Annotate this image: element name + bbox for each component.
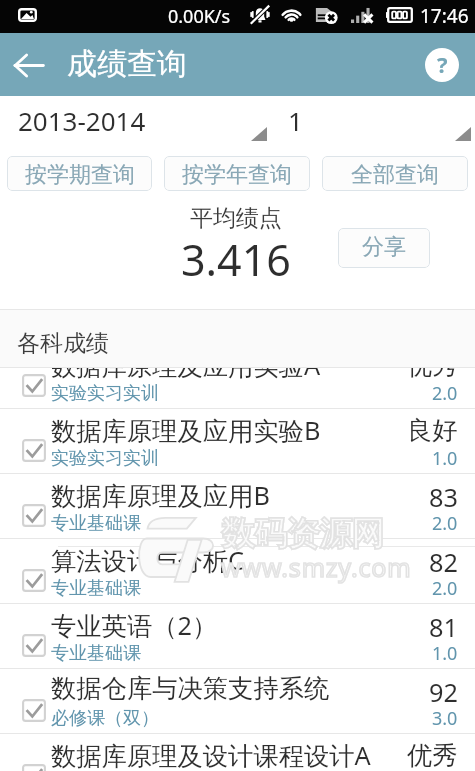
button[interactable] (237, 96, 475, 152)
button[interactable] (0, 96, 237, 152)
button[interactable]: 专业英语（2） (0, 604, 475, 669)
staticText: www.smzy.com (221, 550, 412, 584)
staticText: 优秀 (407, 740, 458, 771)
staticText: 专业基础课 (51, 642, 141, 665)
staticText: 1.0 (432, 446, 458, 471)
staticText: 分享 (362, 233, 406, 261)
button[interactable]: 按学期查询 (7, 156, 152, 191)
button[interactable]: 数据仓库与决策支持系统 (0, 669, 475, 734)
staticText: 数据库原理及应用B (51, 478, 270, 513)
staticText: 数据仓库与决策支持系统 (51, 673, 330, 705)
staticText: 实验实习实训 (51, 382, 159, 405)
staticText: 各科成绩 (17, 329, 109, 358)
button[interactable]: 全部查询 (322, 156, 468, 191)
staticText: 全部查询 (351, 161, 439, 189)
staticText: ? (437, 49, 448, 79)
button[interactable]: 数据库原理及应用B (0, 474, 475, 539)
staticText: 83 (429, 480, 458, 514)
staticText: 专业基础课 (51, 577, 141, 600)
staticText: 82 (429, 545, 458, 579)
staticText: 成绩查询 (67, 45, 187, 83)
staticText: www.smzy.com (221, 550, 412, 584)
button[interactable]: 分享 (338, 228, 430, 268)
staticText: 数据库原理及设计课程设计A (51, 738, 371, 771)
staticText: 专业基础课 (51, 512, 141, 535)
button[interactable]: 数据库原理及应用实验A (0, 368, 475, 409)
staticText: 数码资源网 (222, 513, 384, 555)
button[interactable]: 按学年查询 (164, 156, 310, 191)
staticText: 1.0 (432, 641, 458, 666)
button[interactable]: 数据库原理及设计课程设计A (0, 734, 475, 771)
button[interactable]: Help (425, 48, 459, 82)
staticText: 算法设计与分析C (51, 543, 245, 578)
button[interactable]: Back (0, 37, 56, 93)
staticText: 81 (429, 610, 458, 644)
staticText: 数据库原理及应用实验A (51, 368, 321, 383)
button[interactable]: 数据库原理及应用实验B (0, 409, 475, 474)
staticText: 3.416 (181, 230, 291, 289)
staticText: 2.0 (432, 511, 458, 536)
staticText: 专业英语（2） (51, 608, 218, 643)
staticText: 0.00K/s (168, 4, 231, 29)
staticText: 良好 (407, 415, 458, 447)
staticText: 按学期查询 (25, 161, 135, 189)
staticText: 平均绩点 (190, 204, 282, 233)
staticText: 3.0 (432, 706, 458, 731)
staticText: 1 (288, 103, 303, 138)
staticText: 数据库原理及应用实验B (51, 413, 321, 448)
staticText: 2.0 (432, 381, 458, 406)
staticText: 2.0 (432, 576, 458, 601)
staticText: 数码资源网 (222, 513, 384, 555)
staticText: 92 (429, 675, 458, 709)
button[interactable]: 算法设计与分析C (0, 539, 475, 604)
staticText: 2013-2014 (18, 103, 146, 138)
staticText: 实验实习实训 (51, 447, 159, 470)
staticText: 优秀 (407, 368, 458, 382)
staticText: 必修课（双） (51, 707, 159, 730)
staticText: 按学年查询 (182, 161, 292, 189)
staticText: 17:46 (420, 3, 469, 29)
